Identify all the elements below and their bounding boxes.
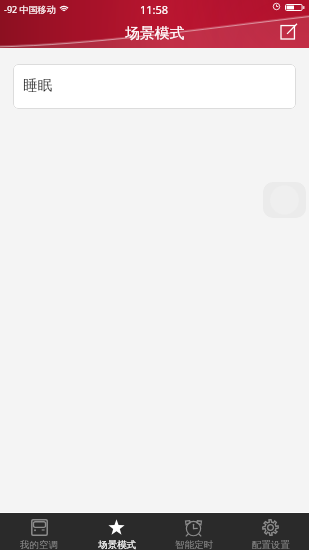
staticText: 睡眠: [23, 76, 52, 94]
button[interactable]: 配置设置: [232, 513, 309, 550]
button[interactable]: 我的空调: [0, 513, 78, 550]
staticText: 我的空调: [20, 539, 58, 550]
button[interactable]: 场景模式: [78, 513, 155, 550]
button[interactable]: Edit scene: [277, 19, 301, 43]
staticText: 场景模式: [98, 539, 136, 550]
staticText: -92 中国移动: [4, 3, 56, 15]
button[interactable]: 智能定时: [155, 513, 232, 550]
button[interactable]: 睡眠: [13, 64, 296, 109]
staticText: 智能定时: [175, 539, 213, 550]
staticText: 场景模式: [125, 24, 185, 43]
staticText: 11:58: [140, 2, 169, 17]
staticText: 配置设置: [252, 539, 290, 550]
